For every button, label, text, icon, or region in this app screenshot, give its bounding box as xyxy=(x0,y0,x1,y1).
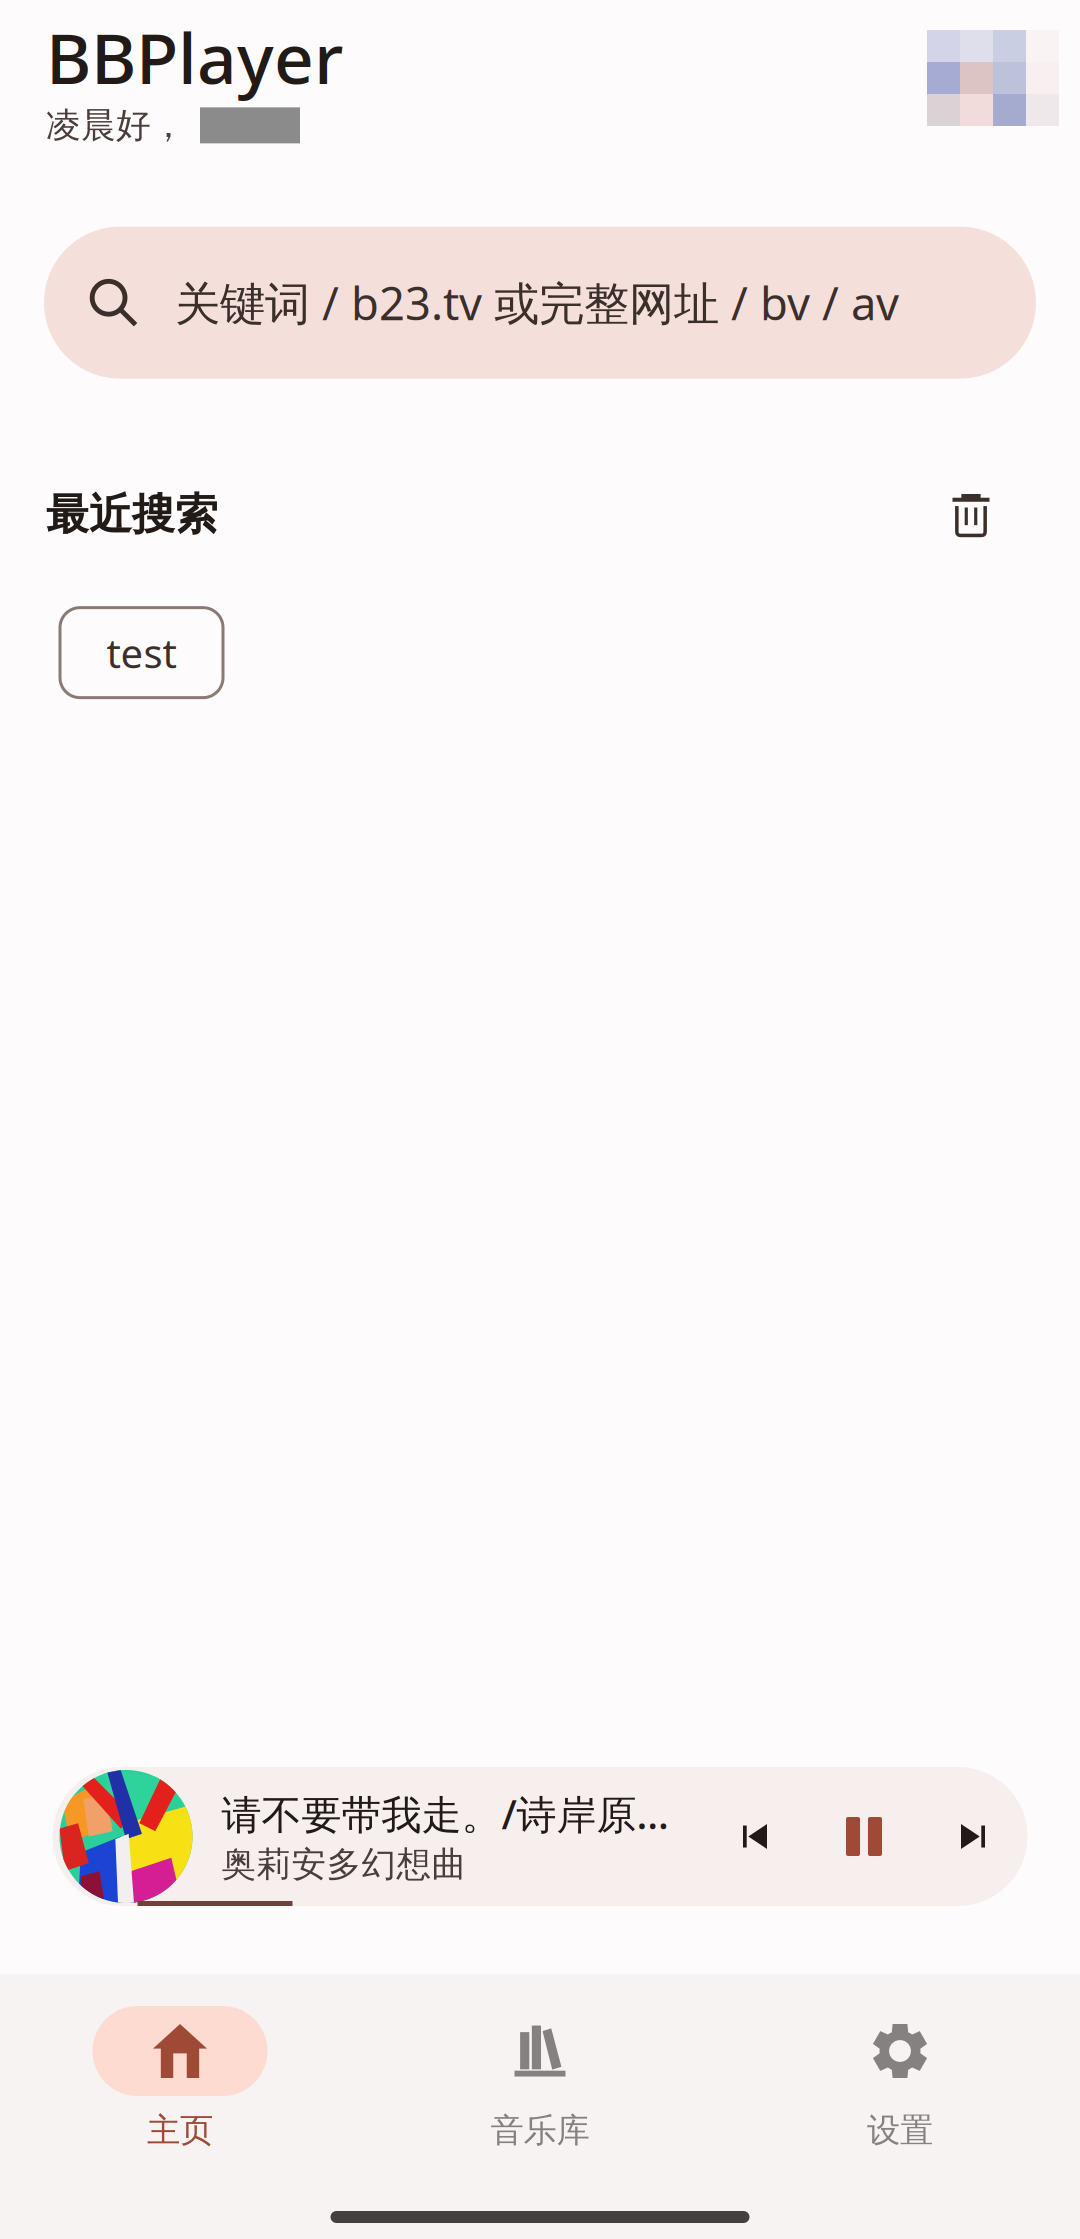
staticText: BBPlayer xyxy=(46,11,343,103)
staticText: 音乐库 xyxy=(490,2110,589,2151)
staticText: 设置 xyxy=(867,2110,933,2151)
button[interactable]: 音乐库 xyxy=(360,1974,720,2164)
staticText: 主页 xyxy=(147,2110,213,2151)
button[interactable]: Pause xyxy=(809,1796,918,1876)
button[interactable]: 关键词 / b23.tv 或完整网址 / bv / av xyxy=(44,227,1036,379)
staticText: 请不要带我走。/诗岸原… xyxy=(221,1787,668,1840)
button[interactable]: 设置 xyxy=(720,1974,1080,2164)
button[interactable]: Profile xyxy=(927,11,1059,126)
staticText: 凌晨好， xyxy=(46,104,186,147)
button[interactable]: Next track xyxy=(918,1796,1027,1876)
button[interactable]: test xyxy=(60,608,223,698)
staticText: 关键词 / b23.tv 或完整网址 / bv / av xyxy=(175,273,899,333)
button[interactable]: Clear recent searches xyxy=(943,487,999,543)
button[interactable]: Previous track xyxy=(700,1796,809,1876)
button[interactable]: 主页 xyxy=(0,1974,360,2164)
button[interactable]: 请不要带我走。/诗岸原… xyxy=(52,1767,1027,1906)
staticText: 奥莉安多幻想曲 xyxy=(221,1843,466,1886)
staticText: 最近搜索 xyxy=(46,488,218,541)
staticText: test xyxy=(106,626,176,679)
